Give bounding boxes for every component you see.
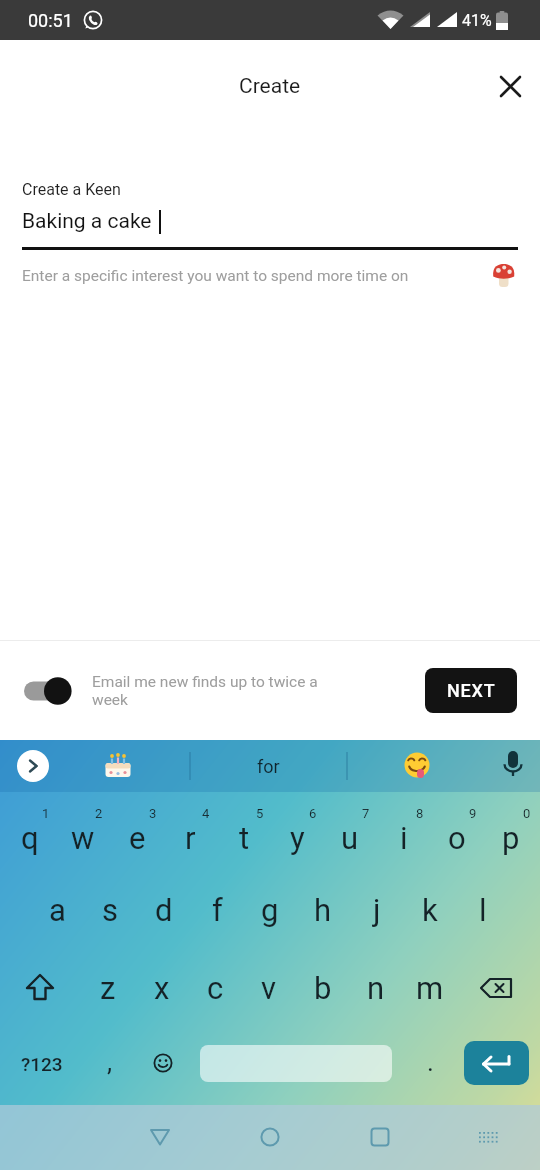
staticText: 4 bbox=[202, 806, 210, 821]
button[interactable] bbox=[103, 751, 133, 781]
staticText: c bbox=[207, 970, 224, 1006]
button[interactable] bbox=[404, 752, 432, 780]
staticText: l bbox=[479, 892, 487, 928]
button[interactable]: u bbox=[324, 806, 376, 870]
button[interactable]: q bbox=[4, 806, 56, 870]
staticText: 00:51 bbox=[28, 10, 73, 31]
staticText: h bbox=[314, 892, 332, 928]
button[interactable] bbox=[200, 1045, 392, 1082]
staticText: w bbox=[71, 820, 95, 856]
button[interactable]: x bbox=[136, 956, 188, 1020]
staticText: j bbox=[373, 892, 381, 928]
staticText: k bbox=[422, 892, 438, 928]
button[interactable]: y bbox=[271, 806, 323, 870]
button[interactable] bbox=[17, 750, 49, 782]
button[interactable] bbox=[24, 677, 72, 705]
button[interactable]: , bbox=[90, 1042, 130, 1082]
staticText: 2 bbox=[95, 806, 103, 821]
staticText: t bbox=[239, 820, 250, 856]
staticText: b bbox=[314, 970, 332, 1006]
staticText: d bbox=[155, 892, 173, 928]
button[interactable] bbox=[152, 1052, 174, 1074]
button[interactable]: w bbox=[57, 806, 109, 870]
staticText: e bbox=[129, 820, 146, 856]
staticText: v bbox=[261, 970, 277, 1006]
button[interactable]: v bbox=[243, 956, 295, 1020]
button[interactable]: z bbox=[82, 956, 134, 1020]
button[interactable]: m bbox=[404, 956, 456, 1020]
staticText: x bbox=[154, 970, 170, 1006]
button[interactable] bbox=[477, 1130, 501, 1146]
staticText: Create bbox=[239, 74, 301, 99]
button[interactable]: for bbox=[200, 740, 337, 792]
staticText: 3 bbox=[149, 806, 157, 821]
staticText: z bbox=[100, 970, 116, 1006]
button[interactable] bbox=[22, 972, 58, 1004]
staticText: g bbox=[261, 892, 279, 928]
staticText: 6 bbox=[309, 806, 317, 821]
button[interactable]: f bbox=[191, 878, 243, 942]
button[interactable]: h bbox=[297, 878, 349, 942]
button[interactable]: c bbox=[189, 956, 241, 1020]
staticText: for bbox=[257, 756, 280, 777]
staticText: n bbox=[367, 970, 385, 1006]
staticText: week bbox=[92, 691, 128, 709]
staticText: 5 bbox=[256, 806, 264, 821]
button[interactable]: n bbox=[350, 956, 402, 1020]
button[interactable]: j bbox=[351, 878, 403, 942]
button[interactable]: l bbox=[457, 878, 509, 942]
staticText: 41% bbox=[462, 11, 492, 30]
staticText: 1 bbox=[42, 806, 50, 821]
button[interactable] bbox=[488, 64, 532, 108]
button[interactable]: s bbox=[84, 878, 136, 942]
staticText: NEXT bbox=[447, 680, 496, 701]
button[interactable]: i bbox=[378, 806, 430, 870]
button[interactable]: k bbox=[404, 878, 456, 942]
staticText: i bbox=[400, 820, 408, 856]
staticText: Email me new finds up to twice a bbox=[92, 673, 318, 691]
button[interactable]: ?123 bbox=[10, 1045, 74, 1082]
button[interactable]: a bbox=[31, 878, 83, 942]
button[interactable]: t bbox=[218, 806, 270, 870]
button[interactable]: NEXT bbox=[425, 668, 517, 713]
button[interactable] bbox=[369, 1127, 391, 1149]
staticText: a bbox=[49, 892, 66, 928]
button[interactable] bbox=[464, 1041, 529, 1085]
button[interactable]: g bbox=[244, 878, 296, 942]
button[interactable]: d bbox=[138, 878, 190, 942]
button[interactable]: o bbox=[431, 806, 483, 870]
button[interactable]: e bbox=[111, 806, 163, 870]
staticText: m bbox=[416, 970, 444, 1006]
staticText: 7 bbox=[362, 806, 370, 821]
staticText: o bbox=[448, 820, 466, 856]
staticText: 9 bbox=[469, 806, 477, 821]
staticText: Enter a specific interest you want to sp… bbox=[22, 267, 409, 285]
staticText: . bbox=[427, 1047, 434, 1077]
staticText: Create a Keen bbox=[22, 180, 121, 199]
button[interactable] bbox=[479, 977, 515, 1001]
staticText: r bbox=[185, 820, 196, 856]
staticText: 0 bbox=[523, 806, 531, 821]
button[interactable]: b bbox=[297, 956, 349, 1020]
staticText: , bbox=[107, 1047, 113, 1077]
staticText: s bbox=[102, 892, 118, 928]
button[interactable]: p bbox=[485, 806, 537, 870]
staticText: 8 bbox=[416, 806, 424, 821]
button[interactable] bbox=[497, 749, 529, 781]
button[interactable] bbox=[149, 1127, 171, 1149]
staticText: Baking a cake bbox=[22, 209, 152, 234]
staticText: q bbox=[21, 820, 39, 856]
staticText: ?123 bbox=[21, 1053, 63, 1075]
staticText: f bbox=[212, 892, 223, 928]
staticText: u bbox=[341, 820, 359, 856]
button[interactable]: r bbox=[164, 806, 216, 870]
staticText: y bbox=[290, 820, 305, 856]
button[interactable] bbox=[259, 1127, 281, 1149]
button[interactable]: . bbox=[410, 1042, 450, 1082]
staticText: p bbox=[502, 820, 520, 856]
